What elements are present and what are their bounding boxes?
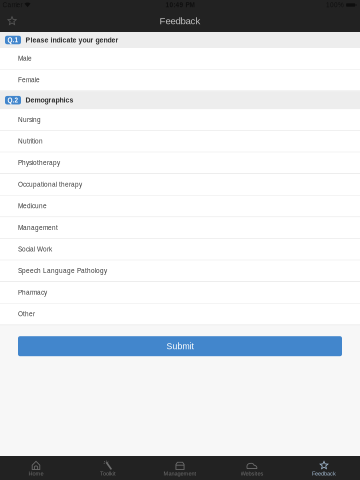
staticText: Speech Language Pathology <box>18 267 107 274</box>
staticText: Other <box>18 310 35 318</box>
button[interactable]: Social Work <box>0 239 360 260</box>
staticText: Toolkit <box>100 470 116 477</box>
staticText: Nursing <box>18 116 41 123</box>
button[interactable]: Nutrition <box>0 131 360 152</box>
staticText: Management <box>18 224 58 231</box>
button[interactable]: Management <box>144 456 216 480</box>
staticText: Q.1 <box>7 36 18 43</box>
button[interactable]: Male <box>0 48 360 70</box>
staticText: Q.2 <box>7 97 18 104</box>
staticText: Home <box>28 470 43 477</box>
staticText: Demographics <box>25 96 73 104</box>
button[interactable]: Medicune <box>0 196 360 217</box>
staticText: Submit <box>166 341 193 351</box>
staticText: Management <box>163 470 196 477</box>
staticText: Please indicate your gender <box>25 36 118 44</box>
button[interactable]: Websites <box>216 456 288 480</box>
button[interactable]: Management <box>0 217 360 239</box>
button[interactable]: Female <box>0 70 360 91</box>
button[interactable]: Submit <box>18 336 342 356</box>
button[interactable]: Physiotherapy <box>0 152 360 174</box>
button[interactable]: Pharmacy <box>0 282 360 304</box>
button[interactable]: Feedback <box>288 456 360 480</box>
button[interactable]: Occupational therapy <box>0 174 360 196</box>
staticText: 100% <box>326 1 344 8</box>
staticText: Male <box>18 55 32 62</box>
staticText: Pharmacy <box>18 289 47 296</box>
staticText: Occupational therapy <box>18 181 82 188</box>
staticText: Medicune <box>18 202 47 210</box>
staticText: Nutrition <box>18 138 43 145</box>
staticText: Social Work <box>18 246 52 253</box>
button[interactable]: Speech Language Pathology <box>0 260 360 282</box>
staticText: Female <box>18 76 40 84</box>
button[interactable]: Toolkit <box>72 456 144 480</box>
staticText: Carrier <box>2 1 22 8</box>
staticText: 10:49 PM <box>165 1 194 8</box>
button[interactable]: Favorite <box>0 10 24 32</box>
staticText: Websites <box>240 470 263 477</box>
button[interactable]: Home <box>0 456 72 480</box>
button[interactable]: Other <box>0 304 360 325</box>
staticText: Feedback <box>159 16 200 26</box>
staticText: Physiotherapy <box>18 159 60 166</box>
staticText: Feedback <box>312 470 336 477</box>
button[interactable]: Nursing <box>0 109 360 131</box>
